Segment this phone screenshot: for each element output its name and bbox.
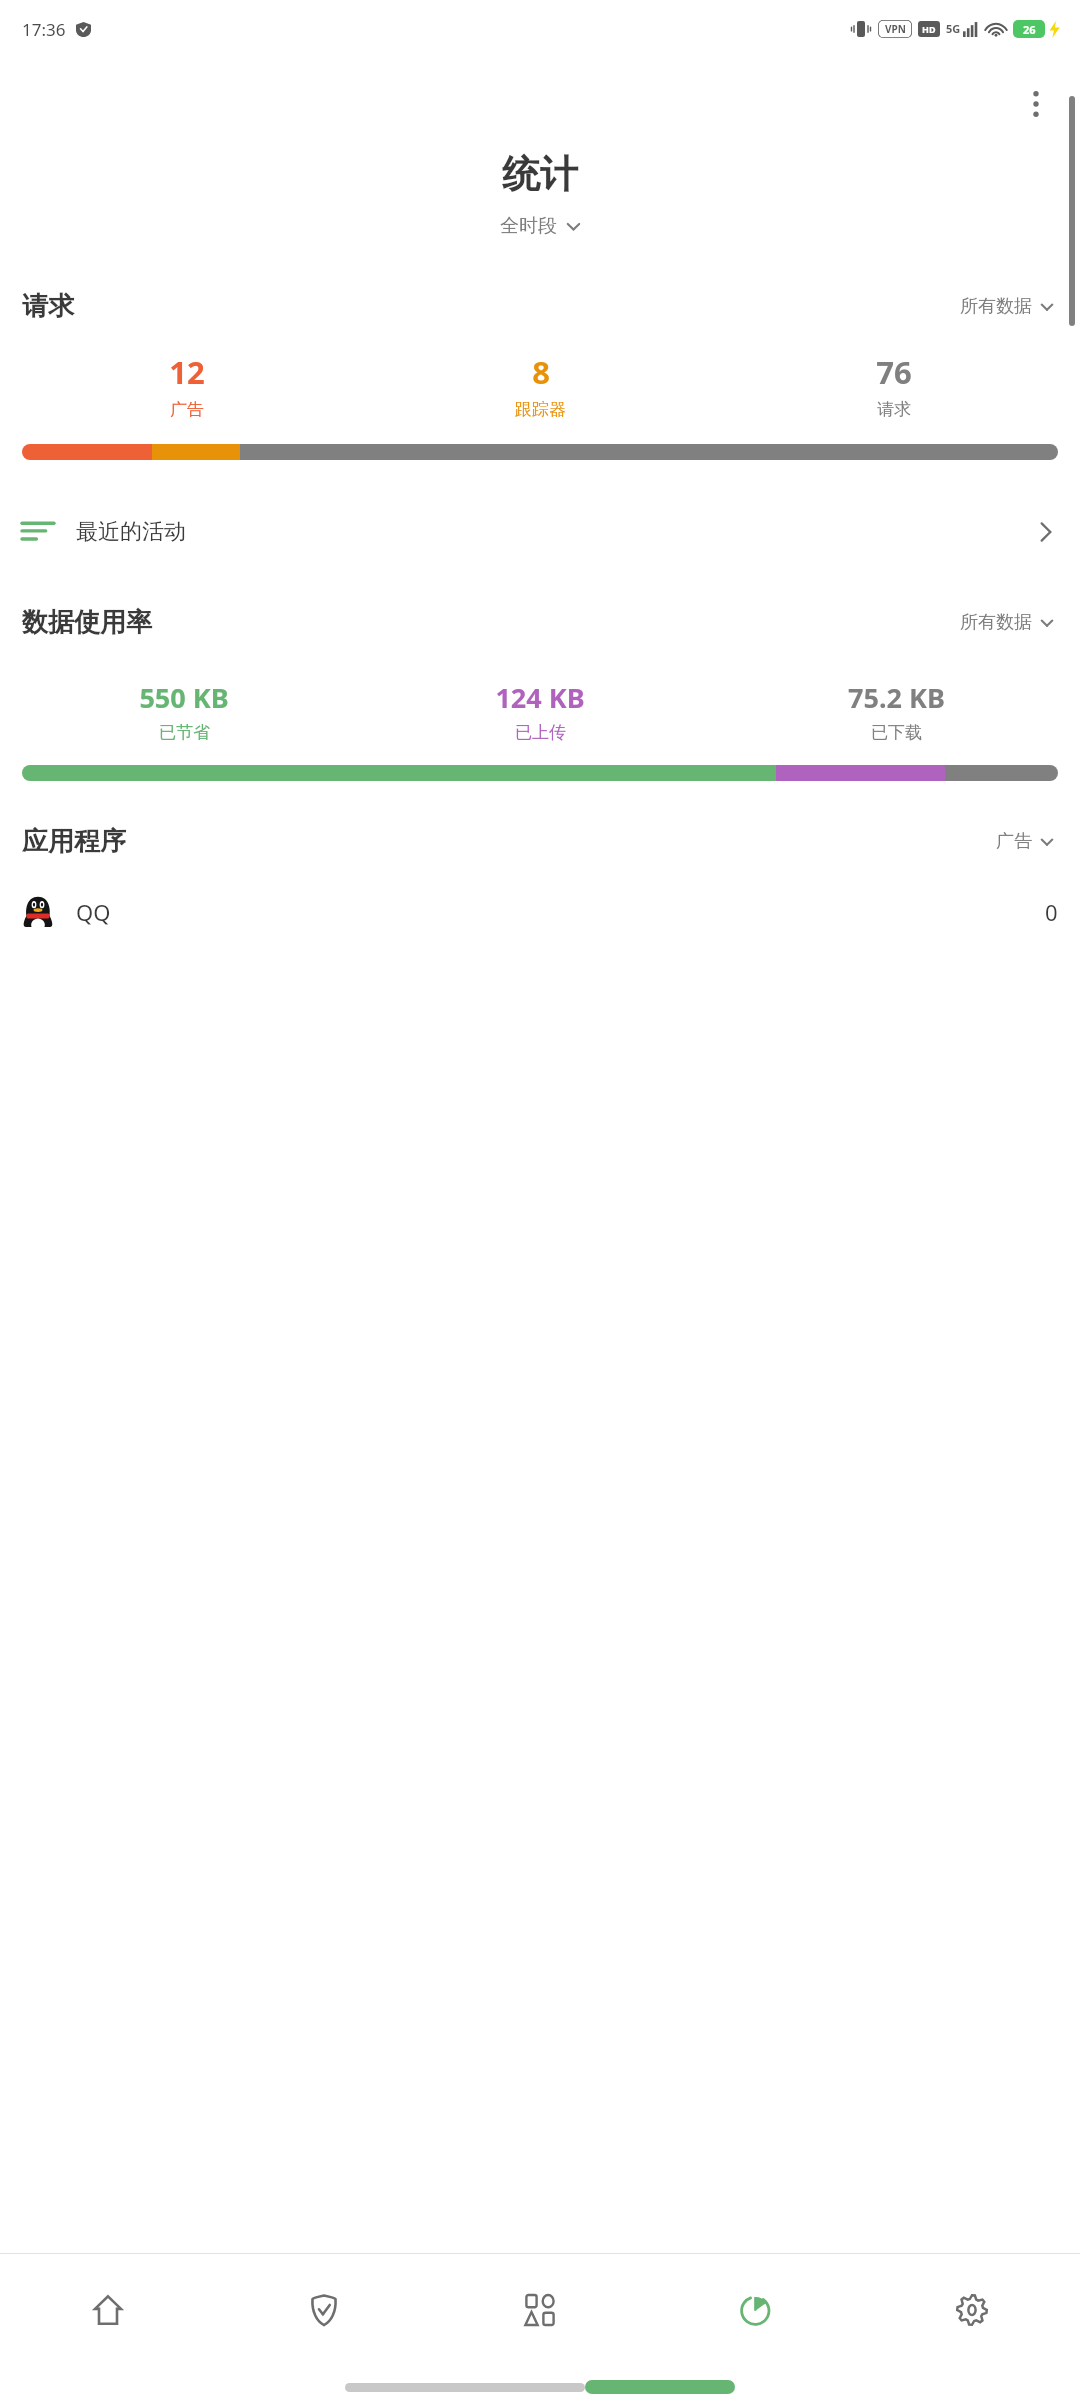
button[interactable]: Home <box>0 2254 216 2366</box>
staticText: VPN <box>885 22 906 36</box>
staticText: 0 <box>1045 897 1058 927</box>
staticText: 跟踪器 <box>515 399 566 420</box>
button[interactable]: 8 <box>364 351 717 420</box>
button[interactable]: Settings <box>864 2254 1080 2366</box>
staticText: 17:36 <box>22 18 66 41</box>
staticText: 应用程序 <box>22 825 126 858</box>
staticText: 124 KB <box>495 679 585 716</box>
staticText: 8 <box>532 351 550 393</box>
button[interactable]: 76 <box>717 351 1070 420</box>
staticText: 已节省 <box>159 722 210 743</box>
button[interactable]: Apps <box>432 2254 648 2366</box>
staticText: 数据使用率 <box>22 606 152 639</box>
staticText: QQ <box>76 897 111 927</box>
button[interactable]: More options <box>1008 76 1064 132</box>
staticText: 5G <box>946 21 961 36</box>
staticText: 所有数据 <box>960 295 1032 318</box>
staticText: 76 <box>876 351 912 393</box>
staticText: 已下载 <box>871 722 922 743</box>
staticText: 550 KB <box>139 679 229 716</box>
staticText: 所有数据 <box>960 611 1032 634</box>
button[interactable]: 最近的活动 <box>0 508 1080 556</box>
button[interactable]: 12 <box>10 351 364 420</box>
staticText: 12 <box>169 351 205 393</box>
staticText: 请求 <box>877 399 911 420</box>
staticText: 已上传 <box>515 722 566 743</box>
button[interactable]: 广告 <box>992 826 1058 857</box>
staticText: 全时段 <box>500 214 557 238</box>
staticText: 广告 <box>170 399 204 420</box>
staticText: 广告 <box>996 830 1032 853</box>
button[interactable]: 75.2 KB <box>718 679 1074 743</box>
button[interactable]: 124 KB <box>362 679 718 743</box>
button[interactable]: QQ <box>0 892 1080 932</box>
button[interactable]: Statistics <box>648 2254 864 2366</box>
button[interactable]: 全时段 <box>0 214 1080 238</box>
staticText: 26 <box>1023 22 1036 37</box>
staticText: 75.2 KB <box>848 679 945 716</box>
staticText: 统计 <box>0 150 1080 198</box>
button[interactable]: 所有数据 <box>956 291 1058 322</box>
button[interactable]: Protection <box>216 2254 432 2366</box>
button[interactable]: 所有数据 <box>956 607 1058 638</box>
staticText: 最近的活动 <box>76 518 186 546</box>
staticText: 请求 <box>22 290 74 323</box>
staticText: HD <box>922 23 936 35</box>
button[interactable]: 550 KB <box>6 679 362 743</box>
